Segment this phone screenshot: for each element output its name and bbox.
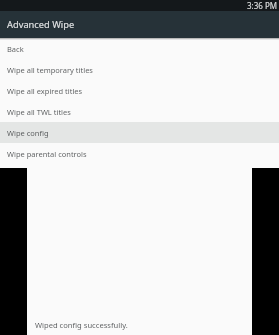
staticText: Wipe config [7,128,49,138]
staticText: 3:36 PM [247,0,278,11]
staticText: Wipe all TWL titles [7,107,71,117]
button[interactable]: Wipe config [0,122,279,143]
staticText: Wipe all temporary titles [7,65,93,75]
staticText: Advanced Wipe [7,18,75,31]
button[interactable]: Wipe all TWL titles [0,101,279,122]
button[interactable]: Back [0,38,279,59]
button[interactable]: Wipe parental controls [0,143,279,164]
button[interactable]: Wipe all temporary titles [0,59,279,80]
staticText: Wiped config successfully. [35,320,128,330]
button[interactable]: Wipe all expired titles [0,80,279,101]
staticText: Wipe parental controls [7,149,87,159]
staticText: Wipe all expired titles [7,86,83,96]
staticText: Back [7,44,24,54]
